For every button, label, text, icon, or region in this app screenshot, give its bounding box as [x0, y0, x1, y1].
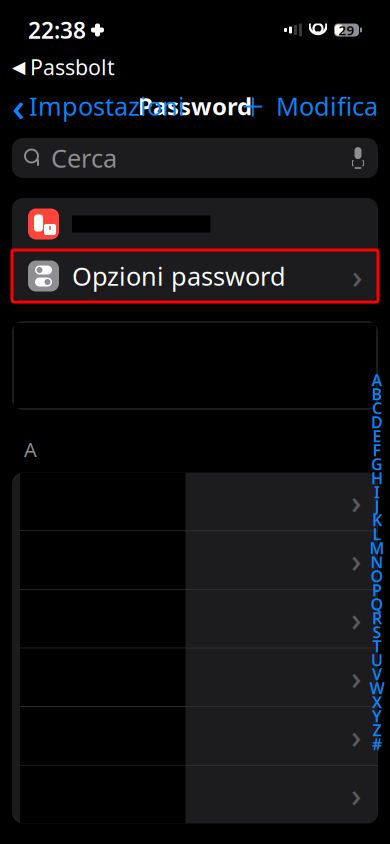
staticText: Passbolt	[30, 53, 115, 81]
staticText: K	[372, 509, 382, 531]
staticText: X	[372, 691, 382, 713]
button[interactable]: Password nascosta	[12, 590, 378, 648]
button[interactable]: Vai a F	[368, 443, 386, 457]
button[interactable]: Aggiungi password	[236, 86, 270, 126]
button[interactable]: Vai a G	[368, 457, 386, 471]
button[interactable]: Vai a U	[368, 653, 386, 667]
staticText: T	[372, 635, 381, 657]
staticText: W	[369, 677, 384, 699]
staticText: Opzioni password	[72, 259, 286, 293]
staticText: ›	[351, 480, 361, 523]
button[interactable]: Vai a M	[368, 541, 386, 555]
button[interactable]: Vai a S	[368, 625, 386, 639]
button[interactable]: Vai a H	[368, 471, 386, 485]
button[interactable]: Avvisi di sicurezza	[12, 198, 378, 250]
staticText: Cerca	[51, 141, 117, 175]
button[interactable]: Vai a B	[368, 387, 386, 401]
staticText: L	[372, 523, 381, 545]
button[interactable]: Vai a W	[368, 681, 386, 695]
staticText: D	[371, 411, 383, 433]
staticText: M	[369, 537, 384, 559]
button[interactable]: Vai a K	[368, 513, 386, 527]
button[interactable]: Elemento nascosto	[12, 321, 378, 410]
button[interactable]: Vai a V	[368, 667, 386, 681]
button[interactable]: ‹	[6, 73, 191, 138]
staticText: J	[374, 495, 379, 517]
button[interactable]: Password nascosta	[12, 648, 378, 706]
staticText: S	[372, 621, 381, 643]
button[interactable]: Password nascosta	[12, 707, 378, 765]
button[interactable]: Password nascosta	[12, 473, 378, 531]
staticText: P	[372, 579, 382, 601]
staticText: Modifica	[276, 89, 378, 123]
staticText: C	[372, 397, 382, 419]
staticText: Password	[138, 90, 252, 122]
staticText: Y	[372, 705, 382, 727]
staticText: O	[370, 565, 383, 587]
staticText: +	[241, 79, 264, 132]
staticText: Impostazioni	[29, 89, 185, 123]
button[interactable]: ◀	[4, 51, 123, 83]
button[interactable]: Vai a D	[368, 415, 386, 429]
staticText: I	[374, 481, 380, 503]
staticText: G	[371, 453, 383, 475]
staticText: ›	[351, 773, 361, 816]
button[interactable]: Vai a X	[368, 695, 386, 709]
button[interactable]: Vai a L	[368, 527, 386, 541]
staticText: A	[24, 436, 37, 463]
staticText: V	[372, 663, 382, 685]
staticText: ‹	[12, 79, 25, 132]
button[interactable]: Password nascosta	[12, 531, 378, 589]
button[interactable]: Vai a E	[368, 429, 386, 443]
staticText: F	[372, 439, 381, 461]
staticText: U	[371, 649, 383, 671]
staticText: ◀	[12, 57, 25, 77]
button[interactable]: Vai a A	[368, 373, 386, 387]
staticText: 29	[338, 21, 354, 39]
button[interactable]: Vai a R	[368, 611, 386, 625]
staticText: 22:38	[28, 15, 86, 45]
staticText: H	[371, 467, 383, 489]
button[interactable]: Vai a C	[368, 401, 386, 415]
staticText: R	[372, 607, 382, 629]
button[interactable]: Vai a J	[368, 499, 386, 513]
staticText: B	[371, 383, 382, 405]
button[interactable]: Vai a Z	[368, 723, 386, 737]
staticText: ›	[351, 715, 361, 757]
button[interactable]: Vai a Q	[368, 597, 386, 611]
button[interactable]: Vai a P	[368, 583, 386, 597]
button[interactable]: Modifica	[270, 83, 384, 129]
staticText: ›	[351, 656, 361, 699]
button[interactable]: Opzioni password	[12, 250, 378, 302]
button[interactable]: Vai a Y	[368, 709, 386, 723]
staticText: #	[372, 733, 382, 755]
button[interactable]: Vai a T	[368, 639, 386, 653]
button[interactable]: Cerca	[12, 138, 378, 178]
staticText: E	[372, 425, 381, 447]
button[interactable]: Password nascosta	[12, 766, 378, 824]
staticText: Q	[370, 593, 383, 615]
staticText: ›	[351, 597, 361, 640]
button[interactable]: Vai a #	[368, 737, 386, 751]
button[interactable]: Vai a N	[368, 555, 386, 569]
staticText: ›	[352, 255, 362, 297]
staticText: Z	[372, 719, 381, 741]
staticText: A	[371, 369, 382, 391]
button[interactable]: Vai a O	[368, 569, 386, 583]
staticText: N	[370, 551, 383, 573]
staticText: ›	[351, 539, 361, 581]
button[interactable]: Vai a I	[368, 485, 386, 499]
